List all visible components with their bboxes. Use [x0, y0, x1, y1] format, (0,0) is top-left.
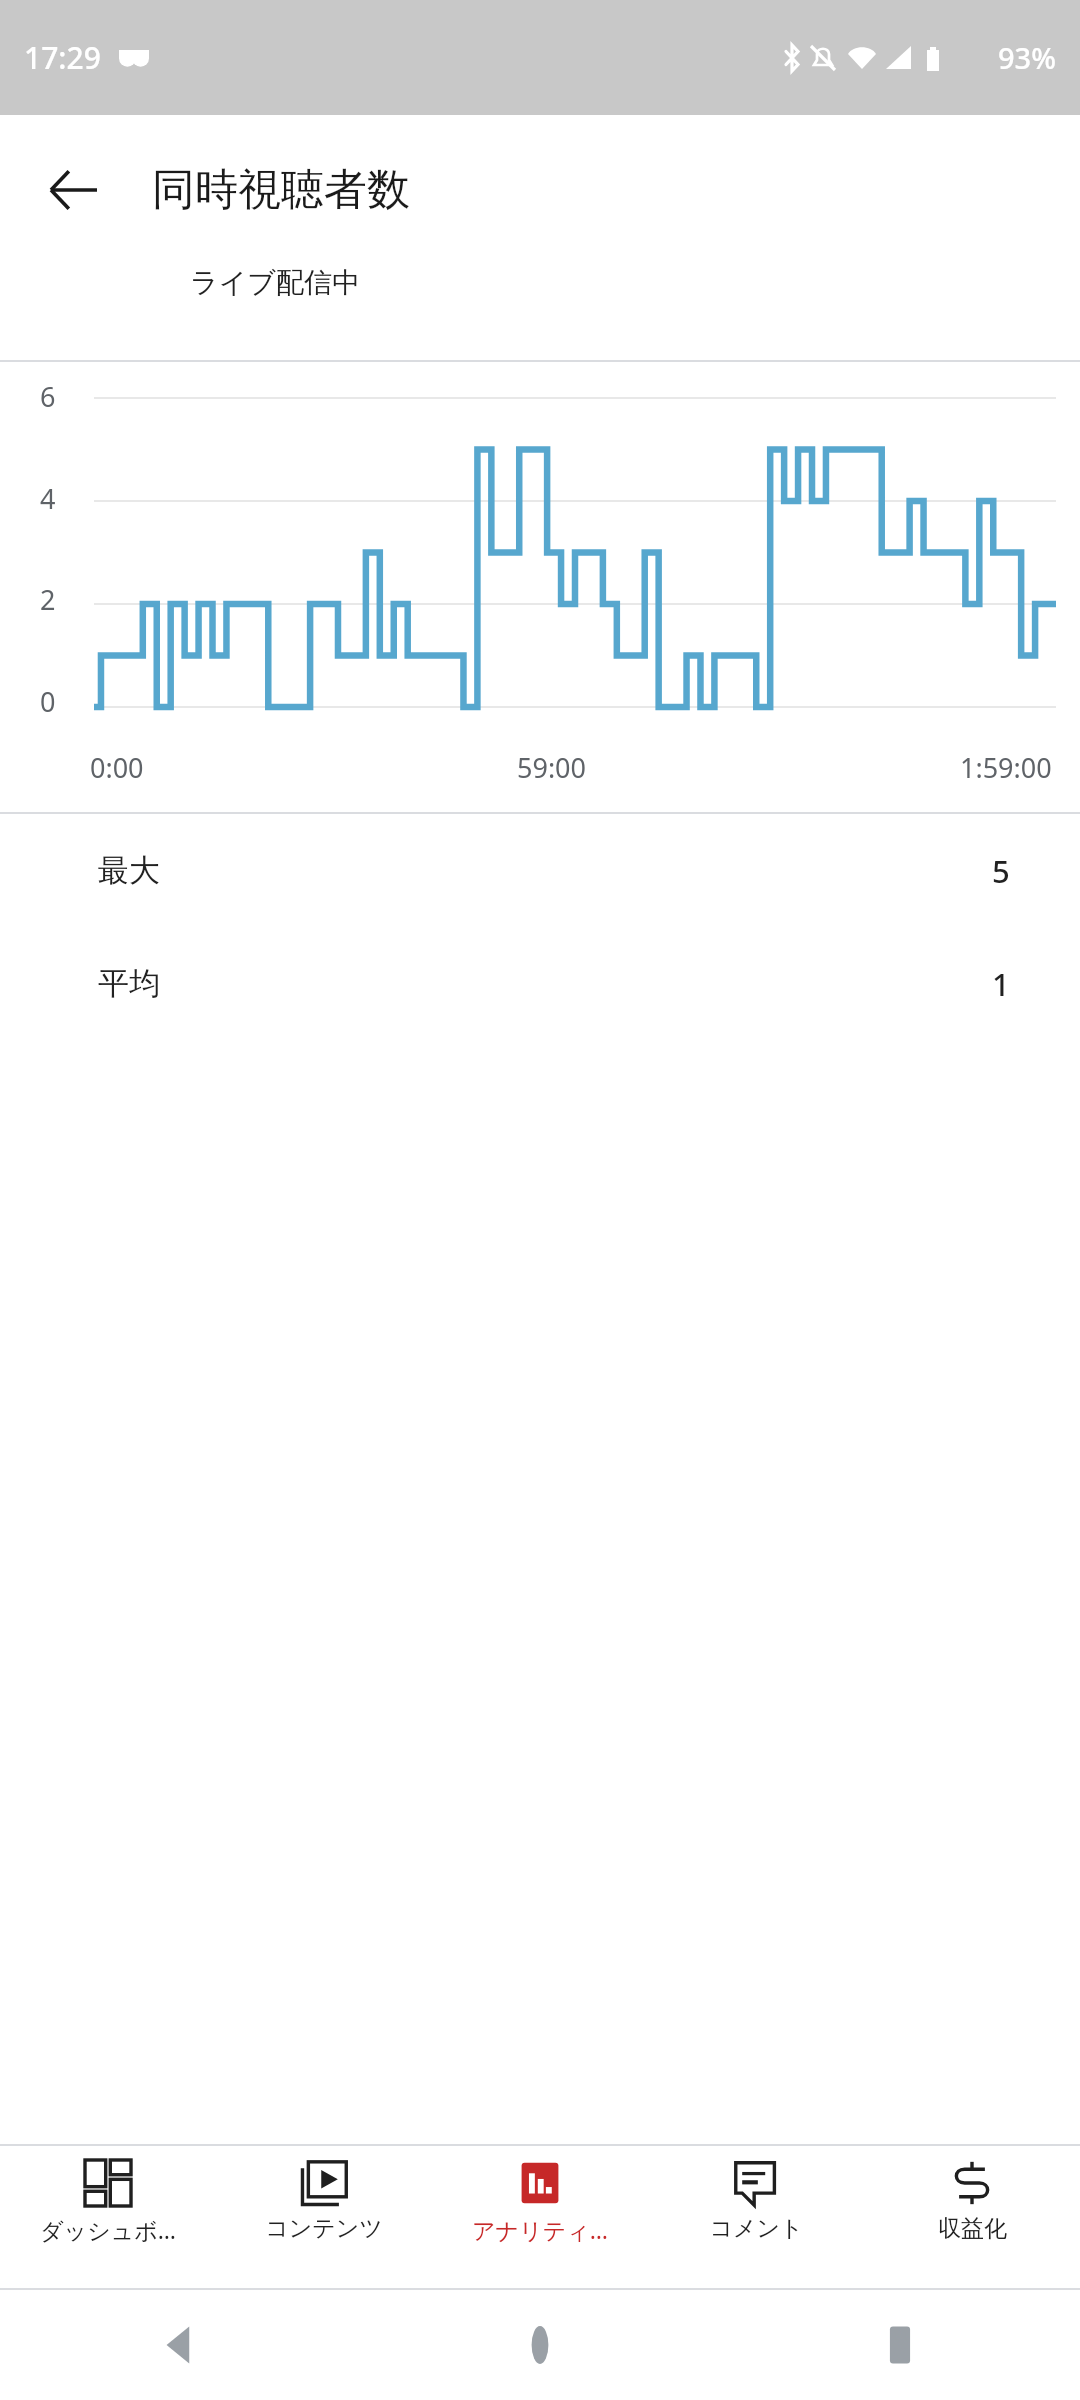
staticText: 0:00 — [90, 749, 144, 786]
staticText: 5 — [992, 850, 1010, 892]
staticText: 17:29 — [24, 37, 101, 78]
staticText: ダッシュボ… — [40, 2214, 176, 2245]
button[interactable]: ダッシュボ… — [0, 2146, 216, 2288]
staticText: 0 — [40, 683, 56, 720]
staticText: 1 — [992, 963, 1010, 1005]
staticText: コメント — [709, 2214, 804, 2243]
button[interactable]: ホーム — [360, 2290, 720, 2400]
button[interactable]: 戻る — [30, 147, 116, 233]
staticText: 平均 — [98, 964, 160, 1003]
staticText: コンテンツ — [265, 2214, 383, 2243]
staticText: 1:59:00 — [960, 749, 1052, 786]
staticText: アナリティ… — [472, 2214, 608, 2245]
button[interactable]: 最大 — [0, 814, 1080, 927]
staticText: 最大 — [98, 851, 160, 890]
button[interactable]: 戻る — [0, 2290, 360, 2400]
staticText: 93% — [998, 38, 1056, 77]
staticText: 4 — [40, 480, 56, 517]
staticText: ライブ配信中 — [190, 265, 360, 300]
button[interactable]: 平均 — [0, 927, 1080, 1040]
button[interactable]: 収益化 — [864, 2146, 1080, 2288]
staticText: 2 — [40, 581, 56, 618]
button[interactable]: コメント — [648, 2146, 864, 2288]
staticText: 59:00 — [517, 749, 587, 786]
button[interactable]: コンテンツ — [216, 2146, 432, 2288]
button[interactable]: 最近のアプリ — [720, 2290, 1080, 2400]
staticText: 同時視聴者数 — [152, 163, 410, 217]
button[interactable]: アナリティ… — [432, 2146, 648, 2288]
staticText: 収益化 — [938, 2214, 1007, 2243]
staticText: 6 — [40, 378, 56, 415]
